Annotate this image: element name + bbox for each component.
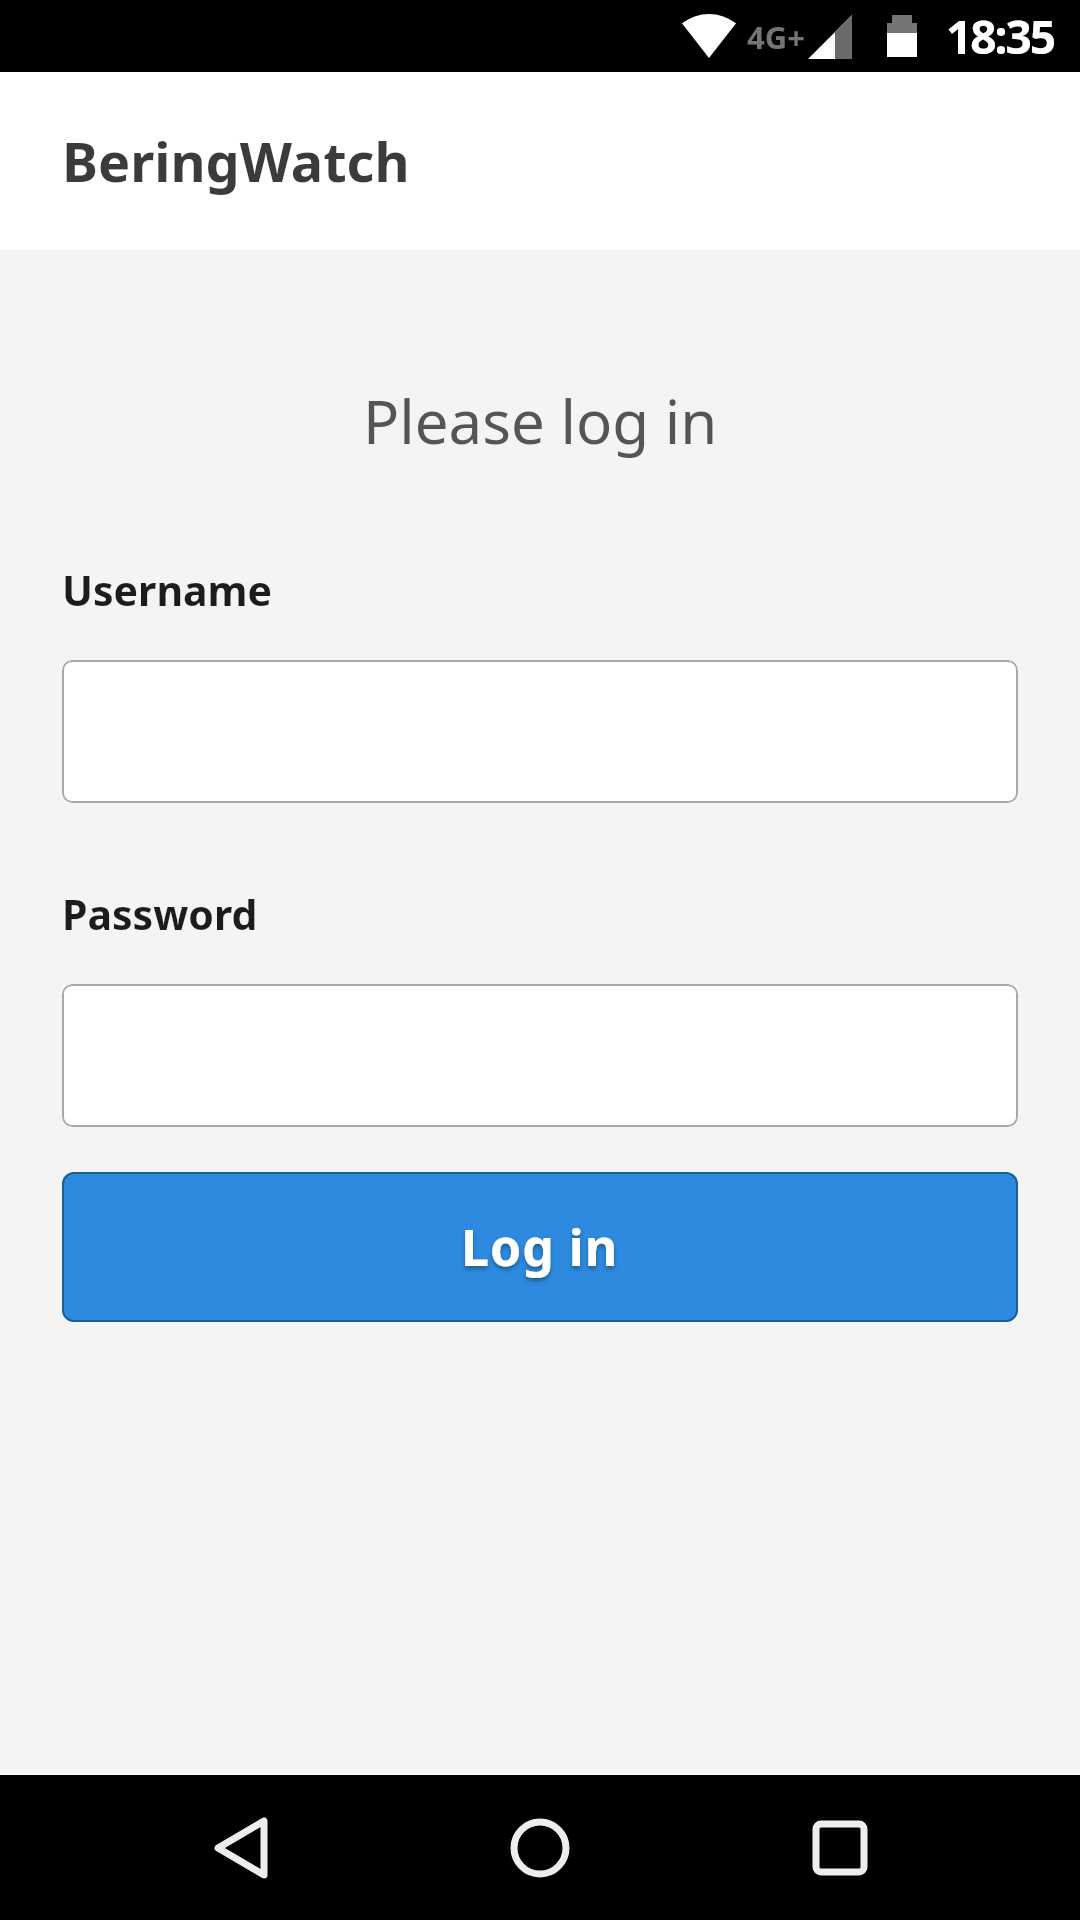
staticText: Username — [62, 562, 273, 618]
staticText: Password — [62, 886, 258, 942]
button[interactable] — [62, 660, 1018, 803]
button[interactable] — [510, 1818, 570, 1878]
button[interactable] — [62, 984, 1018, 1127]
button[interactable] — [214, 1817, 268, 1879]
staticText: 4G+ — [747, 16, 805, 58]
staticText: Log in — [461, 1213, 619, 1281]
button[interactable]: Log in — [62, 1172, 1018, 1322]
staticText: 18:35 — [946, 5, 1055, 68]
staticText: Please log in — [363, 380, 718, 462]
button[interactable] — [813, 1821, 867, 1875]
staticText: BeringWatch — [62, 124, 410, 198]
